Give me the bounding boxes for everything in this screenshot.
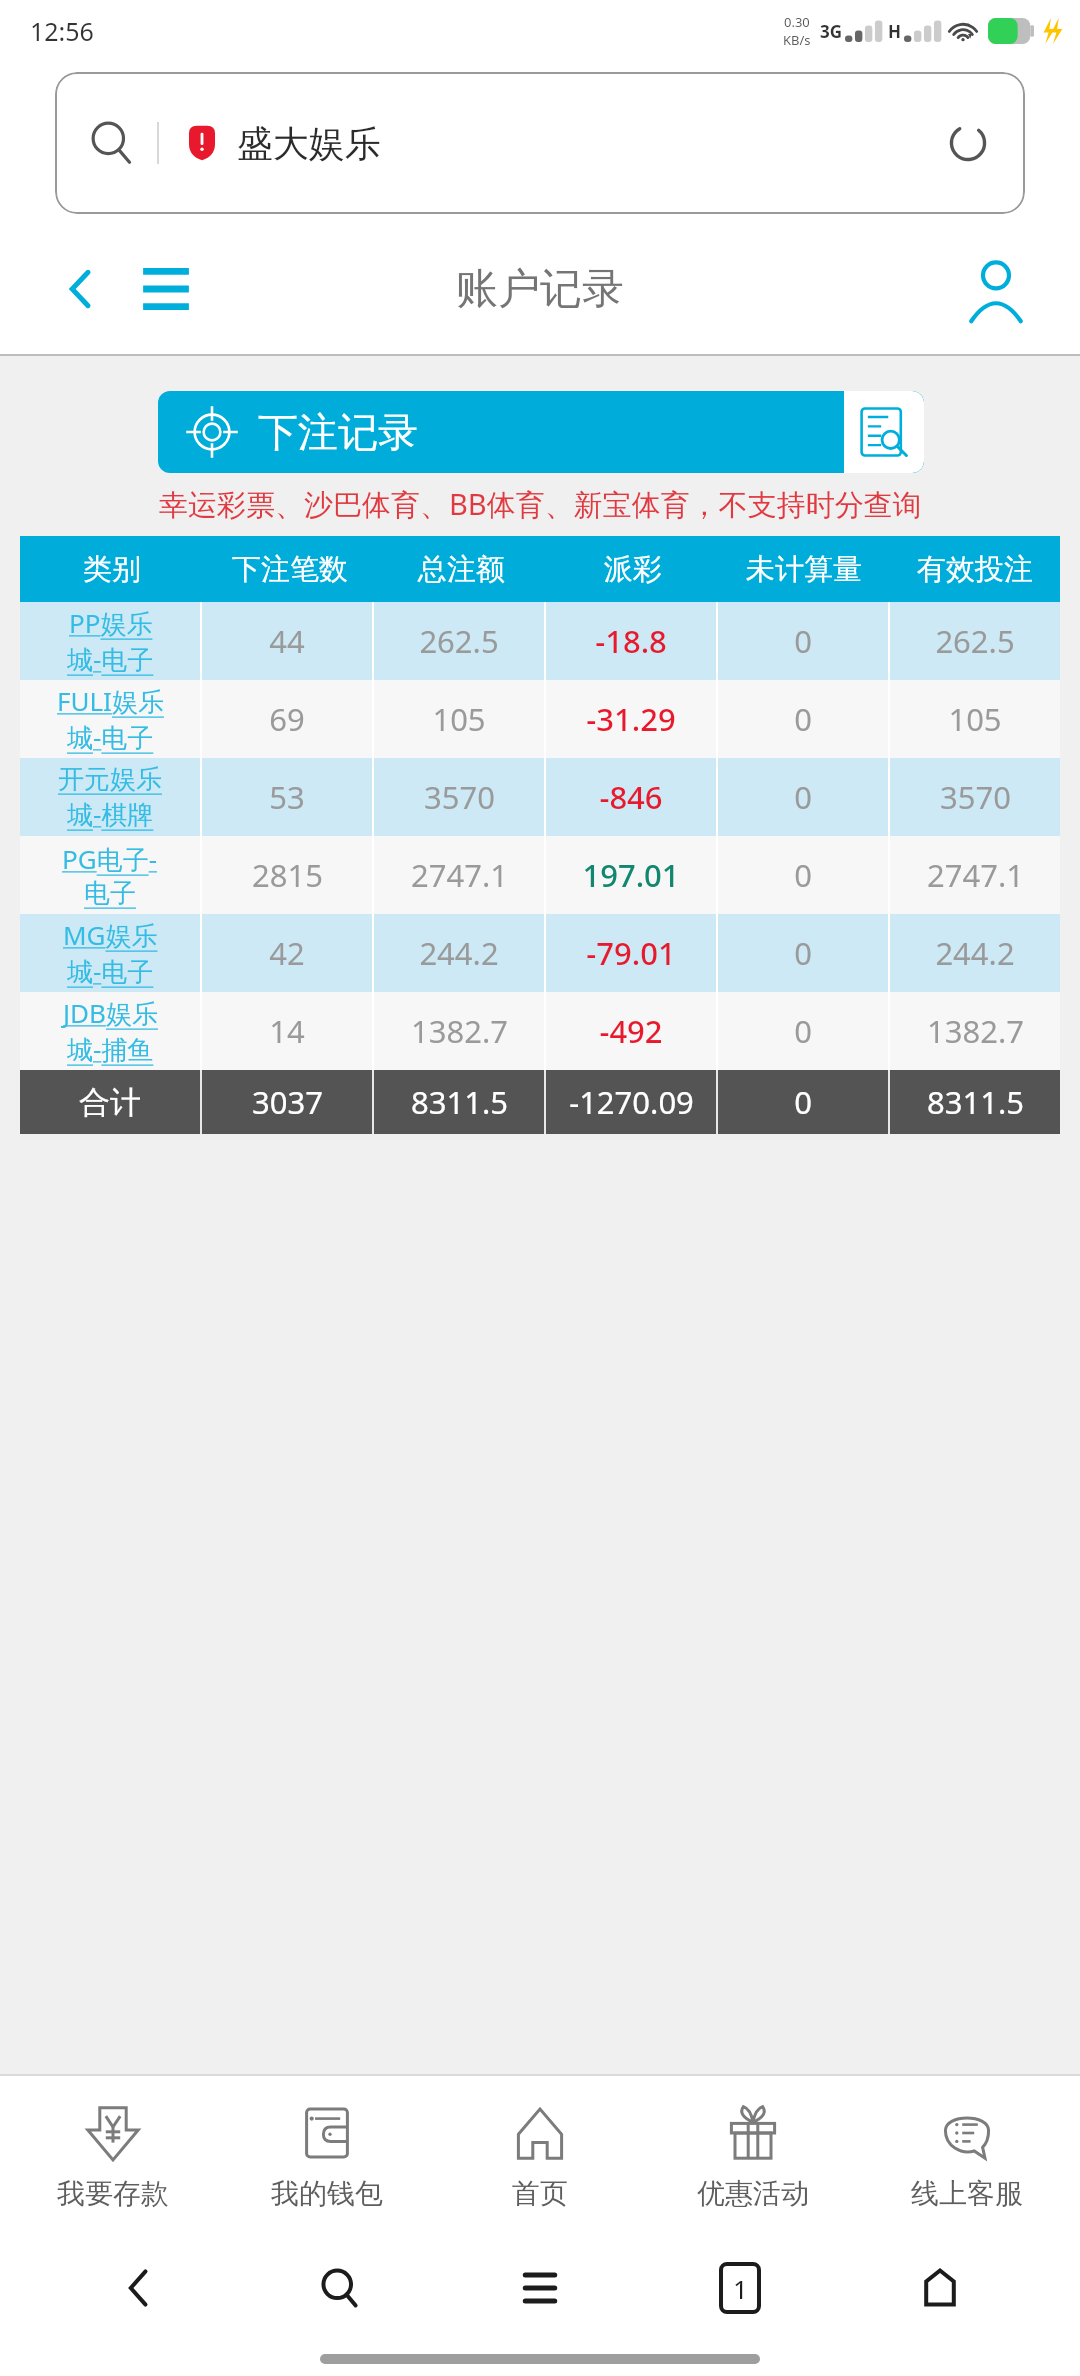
staticText: 105 xyxy=(432,698,486,740)
staticText: 下注笔数 xyxy=(232,551,348,588)
button[interactable]: 优惠活动 xyxy=(653,2076,853,2234)
button[interactable]: Search xyxy=(55,72,1025,214)
staticText: 8311.5 xyxy=(927,1081,1024,1123)
button[interactable]: 我的钱包 xyxy=(227,2076,427,2234)
staticText: -18.8 xyxy=(595,620,667,662)
staticText: 未计算量 xyxy=(746,551,862,588)
button[interactable]: 开元娱乐 xyxy=(20,758,1060,836)
button[interactable]: PP娱乐 xyxy=(20,602,1060,680)
staticText: 账户记录 xyxy=(456,263,624,316)
staticText: 城‑电子 xyxy=(67,719,154,755)
staticText: 总注额 xyxy=(418,551,505,588)
staticText: 我的钱包 xyxy=(271,2176,383,2211)
staticText: 0 xyxy=(794,698,812,740)
staticText: 0 xyxy=(794,932,812,974)
staticText: 城‑电子 xyxy=(67,953,154,989)
staticText: 合计 xyxy=(79,1083,141,1122)
staticText: 城‑电子 xyxy=(67,641,154,677)
staticText: 1382.7 xyxy=(411,1010,508,1052)
staticText: 0 xyxy=(794,1081,812,1123)
staticText: H xyxy=(888,20,902,43)
button[interactable]: FULI娱乐 xyxy=(20,680,1060,758)
button[interactable]: Menu xyxy=(130,253,202,325)
staticText: -31.29 xyxy=(586,698,676,740)
staticText: 53 xyxy=(269,776,305,818)
staticText: PP娱乐 xyxy=(69,605,153,641)
staticText: 0 xyxy=(794,1010,812,1052)
staticText: 262.5 xyxy=(935,620,1015,662)
staticText: 244.2 xyxy=(419,932,499,974)
staticText: -1270.09 xyxy=(569,1081,694,1123)
staticText: 线上客服 xyxy=(911,2176,1023,2211)
staticText: 优惠活动 xyxy=(697,2176,809,2211)
button[interactable]: Back xyxy=(48,256,114,322)
staticText: 城‑捕鱼 xyxy=(67,1031,154,1067)
button[interactable]: JDB娱乐 xyxy=(20,992,1060,1070)
button[interactable]: Refresh xyxy=(941,116,995,170)
staticText: 有效投注 xyxy=(917,551,1033,588)
staticText: 3570 xyxy=(424,776,495,818)
staticText: KB/s xyxy=(783,31,811,49)
button[interactable]: Tabs xyxy=(680,2238,800,2338)
button[interactable]: Recent apps xyxy=(480,2238,600,2338)
staticText: FULI娱乐 xyxy=(57,683,164,719)
staticText: 8311.5 xyxy=(411,1081,508,1123)
staticText: 电子 xyxy=(84,877,136,910)
staticText: -492 xyxy=(599,1010,663,1052)
staticText: 244.2 xyxy=(935,932,1015,974)
staticText: 69 xyxy=(269,698,305,740)
staticText: 1 xyxy=(733,2271,748,2306)
button[interactable]: Query records xyxy=(844,391,924,473)
staticText: 197.01 xyxy=(582,854,680,896)
button[interactable]: 下注记录 xyxy=(158,391,924,473)
staticText: 3G xyxy=(820,20,843,43)
staticText: 首页 xyxy=(512,2176,568,2211)
staticText: -846 xyxy=(599,776,663,818)
staticText: 我要存款 xyxy=(57,2176,169,2211)
staticText: 城‑棋牌 xyxy=(67,796,154,832)
staticText: 0 xyxy=(794,776,812,818)
button[interactable]: PG电子‑ xyxy=(20,836,1060,914)
staticText: 开元娱乐 xyxy=(58,763,162,796)
staticText: 2747.1 xyxy=(411,854,508,896)
staticText: 幸运彩票、沙巴体育、BB体育、新宝体育，不支持时分查询 xyxy=(159,484,922,524)
staticText: 0 xyxy=(794,620,812,662)
staticText: MG娱乐 xyxy=(63,917,158,953)
staticText: PG电子‑ xyxy=(62,841,158,877)
button[interactable]: 我要存款 xyxy=(13,2076,213,2234)
staticText: 派彩 xyxy=(604,551,662,588)
staticText: 1382.7 xyxy=(927,1010,1024,1052)
staticText: 3570 xyxy=(940,776,1011,818)
button[interactable]: 首页 xyxy=(440,2076,640,2234)
staticText: 类别 xyxy=(83,551,141,588)
staticText: 12:56 xyxy=(30,14,94,48)
staticText: -79.01 xyxy=(586,932,676,974)
staticText: 0.30 xyxy=(784,13,810,31)
staticText: 105 xyxy=(948,698,1002,740)
staticText: 2747.1 xyxy=(927,854,1024,896)
button[interactable]: Home xyxy=(880,2238,1000,2338)
staticText: JDB娱乐 xyxy=(63,995,158,1031)
button[interactable]: Account xyxy=(956,249,1036,329)
staticText: 42 xyxy=(269,932,305,974)
staticText: 0 xyxy=(794,854,812,896)
staticText: 14 xyxy=(269,1010,305,1052)
staticText: 44 xyxy=(269,620,305,662)
button[interactable]: Back xyxy=(80,2238,200,2338)
staticText: 盛大娱乐 xyxy=(237,121,381,166)
staticText: 下注记录 xyxy=(258,407,418,457)
staticText: 262.5 xyxy=(419,620,499,662)
button[interactable]: 线上客服 xyxy=(867,2076,1067,2234)
button[interactable]: Search xyxy=(280,2238,400,2338)
staticText: 2815 xyxy=(252,854,323,896)
other: Search xyxy=(85,116,139,170)
staticText: 3037 xyxy=(252,1081,323,1123)
button[interactable]: MG娱乐 xyxy=(20,914,1060,992)
